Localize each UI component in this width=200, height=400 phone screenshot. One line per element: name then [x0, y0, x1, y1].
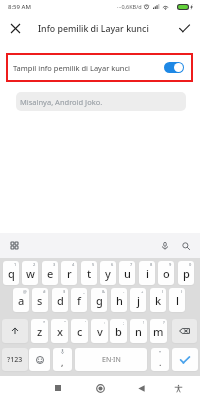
staticText: l: [176, 293, 179, 308]
button[interactable]: Home: [89, 376, 111, 400]
button[interactable]: v: [91, 319, 108, 343]
staticText: &: [102, 289, 105, 294]
button[interactable]: Backspace: [172, 319, 197, 343]
button[interactable]: Recents: [47, 376, 69, 400]
button[interactable]: g: [91, 288, 107, 312]
button[interactable]: f: [71, 288, 87, 312]
staticText: g: [96, 293, 103, 308]
button[interactable]: c: [71, 319, 88, 343]
staticText: k: [155, 293, 162, 308]
staticText: @: [23, 289, 27, 294]
staticText: b: [115, 324, 122, 339]
button[interactable]: o: [158, 261, 174, 285]
staticText: a: [18, 293, 25, 308]
staticText: z: [37, 324, 43, 339]
staticText: ?123: [7, 355, 23, 365]
staticText: 7: [130, 262, 133, 267]
other: Emoji: [36, 356, 44, 364]
staticText: r: [67, 266, 72, 281]
button[interactable]: q: [3, 261, 19, 285]
staticText: ···0,6KB/d: [117, 3, 142, 10]
staticText: w: [26, 266, 35, 281]
staticText: y: [105, 266, 111, 281]
staticText: $: [63, 289, 66, 294]
staticText: .: [159, 356, 162, 368]
button[interactable]: i: [139, 261, 155, 285]
button[interactable]: Tampil info pemilik di Layar kunci: [6, 53, 193, 82]
staticText: i: [146, 266, 149, 281]
button[interactable]: j: [130, 288, 146, 312]
button[interactable]: s: [32, 288, 48, 312]
button[interactable]: Save: [169, 13, 200, 44]
staticText: _: [83, 289, 85, 294]
button[interactable]: EN·IN: [75, 348, 147, 371]
button[interactable]: ”: [151, 348, 169, 371]
staticText: ': [85, 320, 86, 325]
staticText: 3: [53, 262, 56, 267]
button[interactable]: t: [81, 261, 97, 285]
button[interactable]: Enter: [172, 348, 198, 371]
staticText: c: [77, 324, 83, 339]
staticText: :: [104, 320, 106, 325]
staticText: j: [137, 293, 140, 308]
button[interactable]: y: [100, 261, 116, 285]
button[interactable]: p: [178, 261, 194, 285]
button[interactable]: Close: [0, 13, 31, 44]
button[interactable]: u: [119, 261, 135, 285]
button[interactable]: w: [22, 261, 38, 285]
staticText: q: [8, 266, 15, 281]
button[interactable]: Misalnya, Android Joko.: [16, 92, 186, 111]
button[interactable]: h: [111, 288, 127, 312]
button[interactable]: k: [150, 288, 166, 312]
staticText: Misalnya, Android Joko.: [20, 97, 103, 107]
staticText: ": [64, 320, 66, 325]
staticText: d: [57, 293, 64, 308]
staticText: 8:59 AM: [8, 3, 31, 11]
button[interactable]: r: [61, 261, 77, 285]
button[interactable]: Back: [130, 376, 152, 400]
button[interactable]: l: [169, 288, 185, 312]
button[interactable]: Voice input: [156, 233, 174, 258]
button[interactable]: b: [110, 319, 127, 343]
staticText: Tampil info pemilik di Layar kunci: [13, 63, 130, 73]
button[interactable]: a: [13, 288, 29, 312]
button[interactable]: z: [31, 319, 48, 343]
staticText: t: [87, 266, 92, 281]
staticText: v: [97, 324, 103, 339]
staticText: u: [124, 266, 131, 281]
button[interactable]: Accessibility: [167, 376, 189, 400]
staticText: 6: [111, 262, 114, 267]
staticText: !: [143, 320, 145, 325]
button[interactable]: e: [42, 261, 58, 285]
button[interactable]: ,: [53, 348, 72, 371]
staticText: h: [116, 293, 123, 308]
staticText: ;: [123, 320, 125, 325]
button[interactable]: Shift: [2, 319, 28, 343]
staticText: 8: [150, 262, 153, 267]
staticText: *: [43, 320, 46, 325]
button[interactable]: n: [130, 319, 147, 343]
button[interactable]: Emoji: [29, 348, 50, 371]
staticText: ”: [159, 349, 161, 356]
button[interactable]: m: [150, 319, 167, 343]
staticText: m: [153, 324, 164, 339]
button[interactable]: Toolbar: [5, 233, 23, 258]
button[interactable]: x: [51, 319, 68, 343]
staticText: +: [141, 289, 144, 294]
staticText: p: [183, 266, 190, 281]
staticText: #: [43, 289, 46, 294]
staticText: EN·IN: [102, 355, 121, 365]
button[interactable]: ?123: [2, 348, 28, 371]
staticText: ): [181, 289, 183, 294]
button[interactable]: Search: [177, 233, 195, 258]
staticText: 1: [14, 262, 17, 267]
staticText: -: [123, 289, 125, 294]
staticText: 5: [92, 262, 95, 267]
staticText: ,: [61, 356, 64, 368]
staticText: f: [77, 293, 81, 308]
staticText: Info pemilik di Layar kunci: [38, 23, 149, 35]
staticText: 4: [72, 262, 75, 267]
button[interactable]: d: [52, 288, 68, 312]
staticText: x: [57, 324, 63, 339]
staticText: ?: [163, 320, 165, 325]
